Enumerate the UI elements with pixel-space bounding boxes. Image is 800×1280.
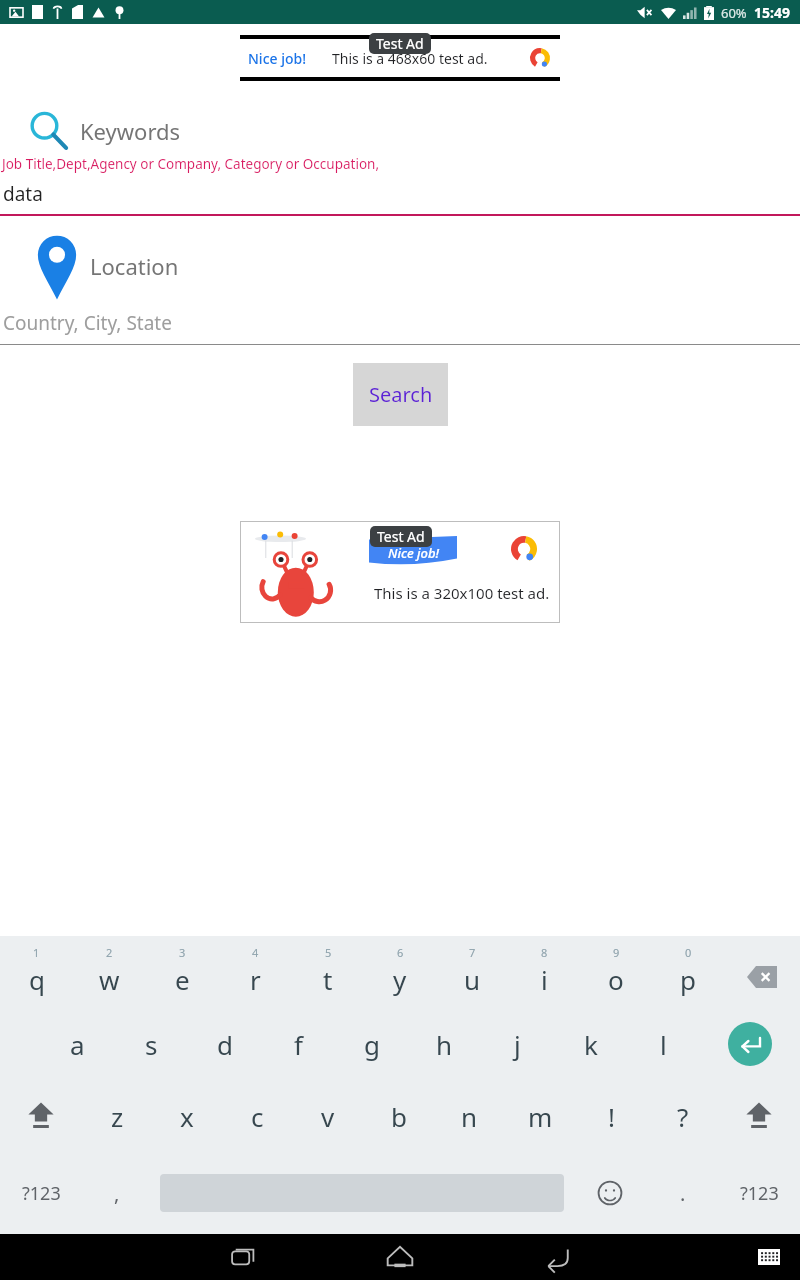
staticText: v bbox=[321, 1099, 335, 1134]
button[interactable]: 9 bbox=[580, 936, 652, 1008]
staticText: l bbox=[660, 1027, 667, 1062]
staticText: , bbox=[114, 1180, 120, 1207]
button[interactable]: c bbox=[222, 1080, 292, 1152]
staticText: 6 bbox=[397, 945, 404, 960]
staticText: Nice job! bbox=[248, 49, 307, 68]
button[interactable]: Nice job! bbox=[241, 522, 559, 622]
button[interactable]: a bbox=[40, 1008, 114, 1080]
button[interactable]: Home bbox=[374, 1234, 426, 1280]
staticText: e bbox=[175, 962, 190, 997]
staticText: x bbox=[180, 1099, 194, 1134]
button[interactable]: ?123 bbox=[718, 1152, 800, 1234]
button[interactable]: . bbox=[648, 1152, 718, 1234]
button[interactable]: x bbox=[152, 1080, 222, 1152]
button[interactable]: 4 bbox=[219, 936, 292, 1008]
staticText: c bbox=[251, 1099, 264, 1134]
staticText: Test Ad bbox=[376, 34, 424, 53]
button[interactable]: Emoji bbox=[572, 1152, 648, 1234]
button[interactable]: g bbox=[335, 1008, 408, 1080]
staticText: . bbox=[680, 1180, 686, 1207]
button[interactable]: n bbox=[434, 1080, 505, 1152]
staticText: 15:49 bbox=[754, 3, 790, 22]
staticText: i bbox=[541, 962, 548, 997]
staticText: k bbox=[584, 1027, 598, 1062]
button[interactable]: ? bbox=[647, 1080, 718, 1152]
button[interactable]: s bbox=[114, 1008, 188, 1080]
button[interactable]: ! bbox=[576, 1080, 647, 1152]
staticText: o bbox=[608, 962, 624, 997]
button[interactable]: 6 bbox=[364, 936, 436, 1008]
staticText: 3 bbox=[179, 945, 186, 960]
button[interactable]: v bbox=[292, 1080, 363, 1152]
staticText: Job Title,Dept,Agency or Company, Catego… bbox=[2, 155, 380, 173]
staticText: h bbox=[436, 1027, 453, 1062]
staticText: ?123 bbox=[740, 1181, 779, 1206]
staticText: 9 bbox=[613, 945, 620, 960]
staticText: j bbox=[514, 1027, 521, 1062]
staticText: 7 bbox=[469, 945, 476, 960]
staticText: r bbox=[250, 962, 261, 997]
button[interactable]: 0 bbox=[652, 936, 724, 1008]
staticText: Nice job! bbox=[388, 544, 439, 562]
button[interactable]: , bbox=[82, 1152, 152, 1234]
button[interactable]: data bbox=[0, 181, 800, 216]
button[interactable]: j bbox=[481, 1008, 554, 1080]
button[interactable]: k bbox=[554, 1008, 627, 1080]
button[interactable]: 7 bbox=[436, 936, 508, 1008]
button[interactable]: Search bbox=[353, 363, 448, 426]
staticText: Country, City, State bbox=[3, 310, 172, 336]
staticText: Test Ad bbox=[377, 527, 425, 546]
staticText: 60% bbox=[721, 4, 747, 22]
button[interactable]: Backspace bbox=[724, 936, 800, 1008]
button[interactable]: h bbox=[408, 1008, 481, 1080]
staticText: 4 bbox=[252, 945, 259, 960]
staticText: y bbox=[393, 962, 407, 997]
button[interactable]: Keyboard bbox=[752, 1240, 786, 1274]
staticText: p bbox=[680, 962, 696, 997]
button[interactable]: 8 bbox=[508, 936, 580, 1008]
button[interactable]: ?123 bbox=[0, 1152, 82, 1234]
button[interactable]: z bbox=[82, 1080, 152, 1152]
staticText: Search bbox=[369, 381, 433, 408]
staticText: m bbox=[528, 1099, 553, 1134]
staticText: 0 bbox=[685, 945, 692, 960]
staticText: 1 bbox=[33, 945, 40, 960]
staticText: Location bbox=[90, 251, 179, 281]
staticText: a bbox=[70, 1027, 85, 1062]
staticText: data bbox=[3, 181, 43, 207]
button[interactable]: Country, City, State bbox=[0, 310, 800, 345]
button[interactable]: 3 bbox=[146, 936, 219, 1008]
staticText: ?123 bbox=[22, 1181, 61, 1206]
button[interactable]: Back bbox=[531, 1234, 583, 1280]
staticText: 2 bbox=[106, 945, 113, 960]
button[interactable]: d bbox=[188, 1008, 262, 1080]
staticText: z bbox=[111, 1099, 124, 1134]
button[interactable]: Shift bbox=[0, 1080, 82, 1152]
button[interactable]: Enter bbox=[700, 1008, 800, 1080]
staticText: Keywords bbox=[80, 116, 181, 146]
button[interactable]: 2 bbox=[73, 936, 146, 1008]
button[interactable]: f bbox=[262, 1008, 335, 1080]
button[interactable]: Shift bbox=[718, 1080, 800, 1152]
staticText: This is a 320x100 test ad. bbox=[374, 583, 550, 603]
button[interactable]: b bbox=[363, 1080, 434, 1152]
button[interactable]: Nice job! bbox=[240, 35, 560, 81]
staticText: 8 bbox=[541, 945, 548, 960]
staticText: u bbox=[464, 962, 481, 997]
staticText: s bbox=[145, 1027, 158, 1062]
button[interactable]: 1 bbox=[0, 936, 73, 1008]
button[interactable]: Recent apps bbox=[217, 1234, 269, 1280]
button[interactable]: l bbox=[627, 1008, 700, 1080]
staticText: g bbox=[364, 1027, 380, 1062]
button[interactable]: m bbox=[505, 1080, 576, 1152]
staticText: t bbox=[323, 962, 333, 997]
staticText: w bbox=[99, 962, 120, 997]
staticText: ? bbox=[677, 1099, 689, 1134]
staticText: ! bbox=[608, 1099, 615, 1134]
staticText: q bbox=[29, 962, 45, 997]
button[interactable]: 5 bbox=[292, 936, 364, 1008]
staticText: This is a 468x60 test ad. bbox=[332, 49, 488, 68]
staticText: d bbox=[217, 1027, 233, 1062]
staticText: n bbox=[461, 1099, 478, 1134]
